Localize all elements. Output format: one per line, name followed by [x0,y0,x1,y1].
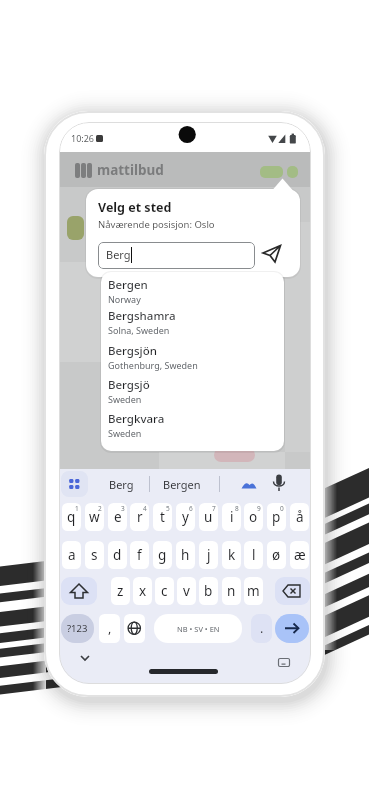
button[interactable]: j [199,541,218,569]
staticText: mattilbud [97,161,164,179]
staticText: 7 [212,504,216,513]
button[interactable]: Bergkvara [101,411,284,444]
staticText: 4 [143,504,147,513]
button[interactable]: p [267,503,286,531]
button[interactable]: g [153,541,172,569]
staticText: t [160,508,165,526]
staticText: x [139,582,147,600]
staticText: Bergen [163,477,201,492]
staticText: Berg [109,477,134,492]
staticText: Gothenburg, Sweden [108,359,198,371]
staticText: d [113,546,122,564]
button[interactable]: q [62,503,81,531]
staticText: k [228,546,236,564]
button[interactable]: . [251,614,272,643]
staticText: Bergsjö [108,377,150,393]
staticText: . [260,620,264,637]
button[interactable]: z [111,577,130,605]
button[interactable]: t [153,503,172,531]
staticText: l [252,546,256,564]
staticText: Sweden [108,427,142,439]
staticText: s [91,546,98,564]
staticText: æ [294,546,306,564]
staticText: å [296,508,304,526]
button[interactable]: v [177,577,196,605]
staticText: r [137,508,143,526]
button[interactable] [275,577,310,605]
button[interactable]: l [244,541,263,569]
staticText: ?123 [67,622,88,635]
button[interactable]: h [176,541,195,569]
button[interactable]: å [290,503,309,531]
button[interactable]: f [130,541,149,569]
staticText: h [181,546,190,564]
button[interactable]: i [222,503,241,531]
staticText: o [249,508,258,526]
button[interactable]: NB • SV • EN [154,614,242,643]
staticText: f [137,546,142,564]
staticText: Bergen [108,277,148,293]
staticText: 5 [166,504,170,513]
button[interactable] [240,477,258,492]
button[interactable]: m [244,577,263,605]
button[interactable]: y [176,503,195,531]
staticText: Velg et sted [98,199,172,216]
staticText: 10:26 [71,132,95,144]
staticText: ø [272,546,281,564]
staticText: v [183,582,190,600]
button[interactable]: w [85,503,104,531]
staticText: m [247,582,260,600]
button[interactable]: Bergen [101,277,284,310]
button[interactable] [271,471,287,497]
button[interactable]: x [133,577,152,605]
staticText: 6 [189,504,193,513]
staticText: n [227,582,236,600]
staticText: Solna, Sweden [108,324,170,336]
button[interactable] [78,652,92,664]
button[interactable]: Bergshamra [101,308,284,341]
staticText: q [67,508,76,526]
button[interactable]: r [130,503,149,531]
staticText: y [182,508,189,526]
staticText: Berg [106,247,131,262]
button[interactable]: Bergsjön [101,343,284,376]
staticText: c [161,582,168,600]
button[interactable]: Bergsjö [101,377,284,410]
button[interactable]: a [62,541,81,569]
button[interactable] [61,471,88,497]
staticText: Bergsjön [108,343,157,359]
staticText: Bergkvara [108,411,165,427]
button[interactable]: s [85,541,104,569]
button[interactable]: n [222,577,241,605]
button[interactable]: e [108,503,127,531]
button[interactable]: k [222,541,241,569]
staticText: 0 [280,504,284,513]
button[interactable]: æ [290,541,309,569]
staticText: u [204,508,213,526]
staticText: a [68,546,76,564]
button[interactable]: o [244,503,263,531]
button[interactable] [124,614,145,643]
staticText: w [89,508,100,526]
button[interactable]: ø [267,541,286,569]
staticText: Sweden [108,393,142,405]
button[interactable] [275,614,309,643]
button[interactable]: Berg [99,471,141,497]
button[interactable]: , [99,614,120,643]
button[interactable] [259,241,285,267]
button[interactable] [61,577,97,605]
button[interactable]: u [199,503,218,531]
staticText: Nåværende posisjon: Oslo [98,218,215,231]
button[interactable]: Bergen [155,471,207,497]
button[interactable]: c [155,577,174,605]
button[interactable]: ?123 [61,614,94,643]
staticText: j [207,546,211,564]
staticText: i [230,508,234,526]
staticText: b [204,582,213,600]
staticText: g [158,546,167,564]
button[interactable] [98,242,255,269]
staticText: NB • SV • EN [177,624,220,634]
button[interactable]: b [199,577,218,605]
button[interactable] [277,657,291,669]
button[interactable]: d [108,541,127,569]
